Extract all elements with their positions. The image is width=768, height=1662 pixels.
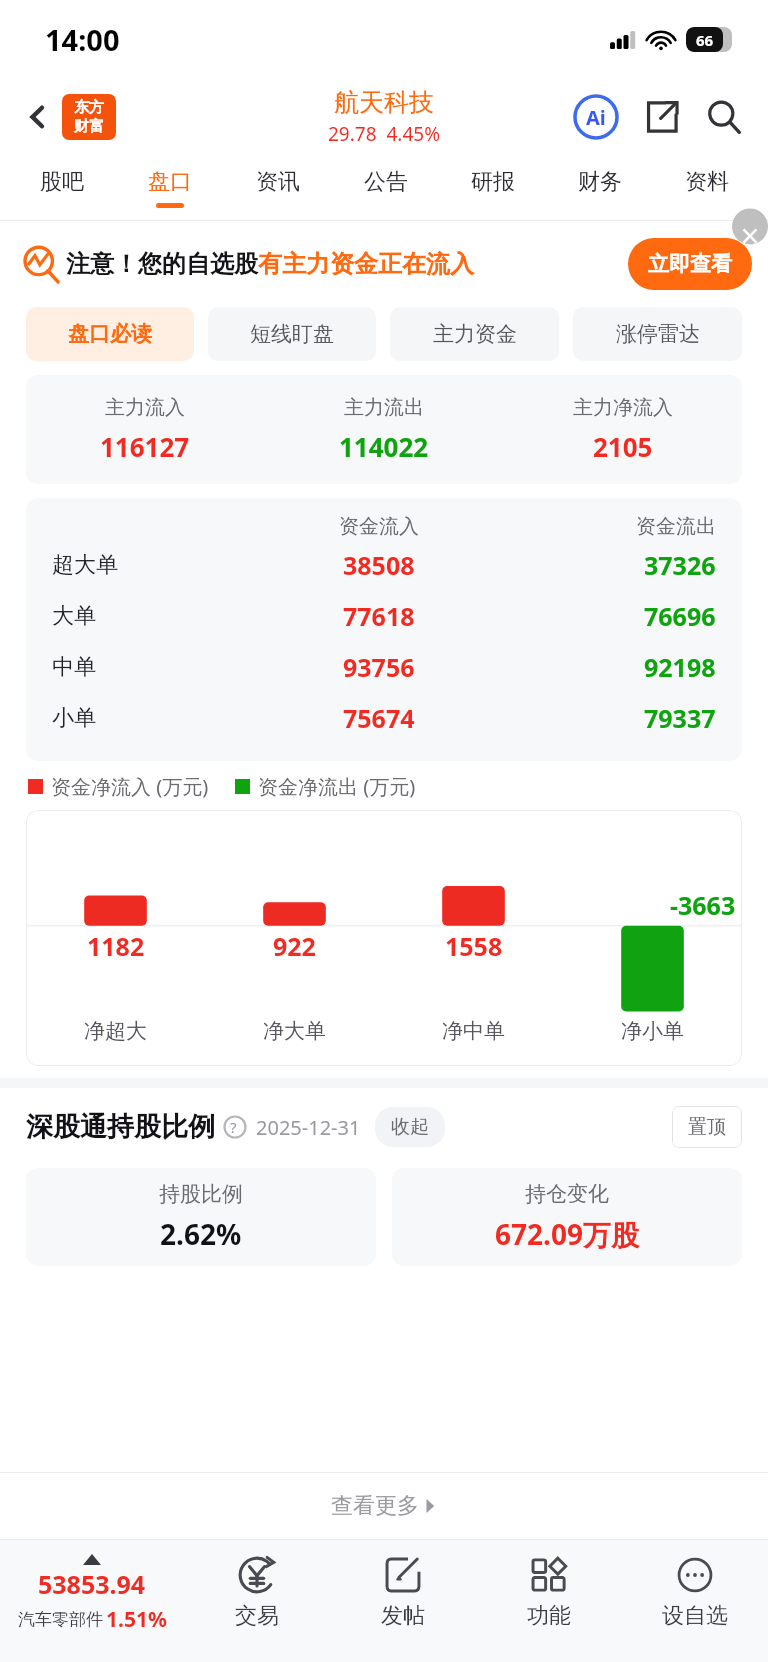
- staticText: 收起: [391, 1115, 429, 1139]
- staticText: 设自选: [662, 1602, 728, 1630]
- staticText: 净超大: [84, 1018, 147, 1044]
- staticText: 发帖: [381, 1602, 425, 1630]
- button[interactable]: East Money logo: [62, 94, 116, 140]
- staticText: 14:00: [45, 20, 120, 59]
- button[interactable]: 发帖: [330, 1540, 476, 1662]
- button[interactable]: Back: [14, 93, 62, 141]
- staticText: 有主力资金正在流入: [258, 249, 474, 279]
- staticText: 查看更多: [331, 1492, 419, 1520]
- button[interactable]: 公告: [332, 156, 439, 220]
- staticText: 汽车零部件: [18, 1609, 103, 1630]
- button[interactable]: 主力流入: [26, 395, 742, 464]
- staticText: ?: [230, 1117, 237, 1137]
- staticText: 资讯: [256, 168, 300, 196]
- staticText: 净大单: [263, 1018, 326, 1044]
- staticText: 29.78 4.45%: [328, 121, 440, 147]
- staticText: 1.51%: [106, 1605, 167, 1634]
- button[interactable]: 盘口必读: [26, 307, 194, 361]
- button[interactable]: 查看更多: [0, 1473, 768, 1539]
- staticText: 功能: [527, 1602, 571, 1630]
- button[interactable]: AI assistant: [568, 89, 624, 145]
- staticText: 资料: [685, 168, 729, 196]
- button[interactable]: 短线盯盘: [208, 307, 376, 361]
- staticText: 小单: [52, 704, 96, 732]
- staticText: 盘口必读: [68, 321, 152, 347]
- staticText: 672.09万股: [495, 1215, 639, 1253]
- staticText: 净中单: [442, 1018, 505, 1044]
- staticText: 75674: [343, 701, 415, 735]
- button[interactable]: 持仓变化: [392, 1168, 742, 1266]
- staticText: 持股比例: [159, 1181, 243, 1207]
- button[interactable]: 超大单: [52, 539, 716, 590]
- button[interactable]: 收起: [391, 1115, 429, 1139]
- staticText: 资金净流出 (万元): [258, 773, 416, 800]
- staticText: 92198: [644, 650, 716, 684]
- staticText: 研报: [471, 168, 515, 196]
- button[interactable]: 注意！您的自选股: [22, 221, 752, 307]
- staticText: 116127: [100, 429, 190, 464]
- button[interactable]: 主力资金: [390, 307, 559, 361]
- button[interactable]: 设自选: [622, 1540, 768, 1662]
- button[interactable]: 研报: [439, 156, 546, 220]
- staticText: 公告: [364, 168, 408, 196]
- staticText: 航天科技: [334, 87, 434, 118]
- staticText: 东方: [74, 98, 104, 117]
- staticText: 1182: [87, 929, 145, 963]
- button[interactable]: 功能: [476, 1540, 622, 1662]
- button[interactable]: 资料: [653, 156, 760, 220]
- button[interactable]: 财务: [546, 156, 653, 220]
- staticText: 53853.94: [38, 1567, 146, 1601]
- staticText: 37326: [644, 548, 716, 582]
- staticText: 76696: [644, 599, 716, 633]
- staticText: 79337: [644, 701, 716, 735]
- button[interactable]: 资讯: [224, 156, 332, 220]
- staticText: 深股通持股比例: [26, 1110, 215, 1144]
- staticText: 资金流入: [339, 514, 419, 539]
- staticText: 置顶: [688, 1115, 726, 1139]
- staticText: 财务: [578, 168, 622, 196]
- staticText: 交易: [235, 1602, 279, 1630]
- staticText: 主力流出: [344, 395, 424, 420]
- staticText: 922: [273, 929, 316, 963]
- button[interactable]: 持股比例: [26, 1168, 376, 1266]
- button[interactable]: 交易: [184, 1540, 330, 1662]
- staticText: 涨停雷达: [616, 321, 700, 347]
- staticText: 净小单: [621, 1018, 684, 1044]
- button[interactable]: 涨停雷达: [573, 307, 742, 361]
- button[interactable]: 股吧: [8, 156, 116, 220]
- staticText: 持仓变化: [525, 1181, 609, 1207]
- button[interactable]: 盘口: [116, 156, 224, 220]
- button[interactable]: Search: [696, 89, 752, 145]
- staticText: 93756: [343, 650, 415, 684]
- staticText: 财富: [74, 117, 104, 136]
- staticText: 1558: [445, 929, 503, 963]
- staticText: 短线盯盘: [250, 321, 334, 347]
- staticText: 注意！您的自选股: [66, 249, 258, 279]
- staticText: 中单: [52, 653, 96, 681]
- staticText: 主力资金: [433, 321, 517, 347]
- staticText: 大单: [52, 602, 96, 630]
- staticText: 股吧: [40, 168, 84, 196]
- staticText: 主力流入: [105, 395, 185, 420]
- button[interactable]: 置顶: [688, 1115, 726, 1139]
- button[interactable]: Share: [634, 89, 690, 145]
- button[interactable]: 小单: [52, 692, 716, 743]
- staticText: 114022: [339, 429, 429, 464]
- staticText: 盘口: [148, 168, 192, 196]
- staticText: 38508: [343, 548, 415, 582]
- button[interactable]: Help: [223, 1115, 247, 1139]
- staticText: 66: [696, 30, 714, 50]
- button[interactable]: Close: [732, 221, 768, 257]
- button[interactable]: 大单: [52, 590, 716, 641]
- button[interactable]: 53853.94: [0, 1540, 184, 1662]
- staticText: Ai: [586, 104, 606, 131]
- staticText: 立即查看: [648, 251, 732, 277]
- staticText: 超大单: [52, 551, 118, 579]
- staticText: -3663: [670, 888, 736, 922]
- button[interactable]: 1182: [26, 810, 742, 1066]
- staticText: 2025-12-31: [256, 1114, 361, 1141]
- staticText: 资金流出: [636, 514, 716, 539]
- button[interactable]: 立即查看: [648, 238, 732, 290]
- staticText: 主力净流入: [573, 395, 673, 420]
- button[interactable]: 中单: [52, 641, 716, 692]
